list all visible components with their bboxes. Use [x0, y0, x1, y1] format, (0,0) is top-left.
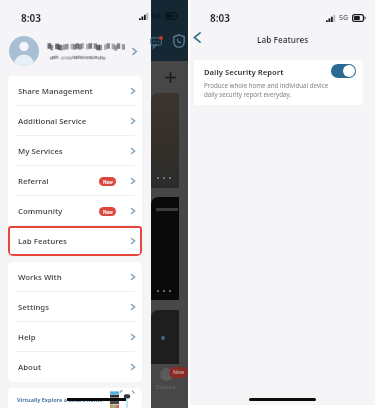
staticText: New — [173, 369, 185, 376]
staticText: Help — [18, 332, 36, 343]
button[interactable]: Back — [187, 27, 207, 47]
staticText: 8:03 — [210, 11, 230, 25]
staticText: Explore — [156, 383, 176, 390]
staticText: daily security report everyday. — [204, 90, 292, 98]
button[interactable]: Works With — [8, 262, 142, 292]
staticText: New — [103, 209, 113, 215]
button[interactable]: My Services — [8, 136, 142, 166]
staticText: Lab Features — [18, 236, 67, 247]
staticText: About — [18, 362, 42, 373]
staticText: Community — [18, 206, 63, 217]
staticText: Additional Service — [18, 116, 87, 127]
button[interactable]: Virtually Explore a Smart Home — [8, 388, 142, 408]
staticText: Produce whole home and individual device — [204, 81, 329, 89]
staticText: My Services — [18, 146, 63, 157]
button[interactable]: Lab Features — [8, 226, 142, 256]
staticText: Share Management — [18, 86, 93, 97]
button[interactable]: Help — [8, 322, 142, 352]
staticText: Virtually Explore a Smart Home — [17, 396, 103, 403]
staticText: 5G — [339, 13, 349, 23]
staticText: 8:03 — [21, 11, 41, 25]
staticText: Lab Features — [257, 34, 309, 45]
button[interactable] — [0, 30, 150, 72]
button[interactable]: Daily Security Report — [194, 60, 363, 105]
button[interactable]: Settings — [8, 292, 142, 322]
staticText: Daily Security Report — [204, 67, 284, 77]
staticText: Referral — [18, 176, 49, 187]
staticText: New — [103, 179, 113, 185]
button[interactable]: Community — [8, 196, 142, 226]
button[interactable]: About — [8, 352, 142, 382]
staticText: Settings — [18, 302, 50, 313]
button[interactable]: Daily Security Report toggle — [331, 64, 356, 78]
staticText: Works With — [18, 272, 62, 283]
button[interactable]: Share Management — [8, 76, 142, 106]
button[interactable]: Referral — [8, 166, 142, 196]
staticText: 5G — [152, 11, 162, 21]
button[interactable]: Additional Service — [8, 106, 142, 136]
